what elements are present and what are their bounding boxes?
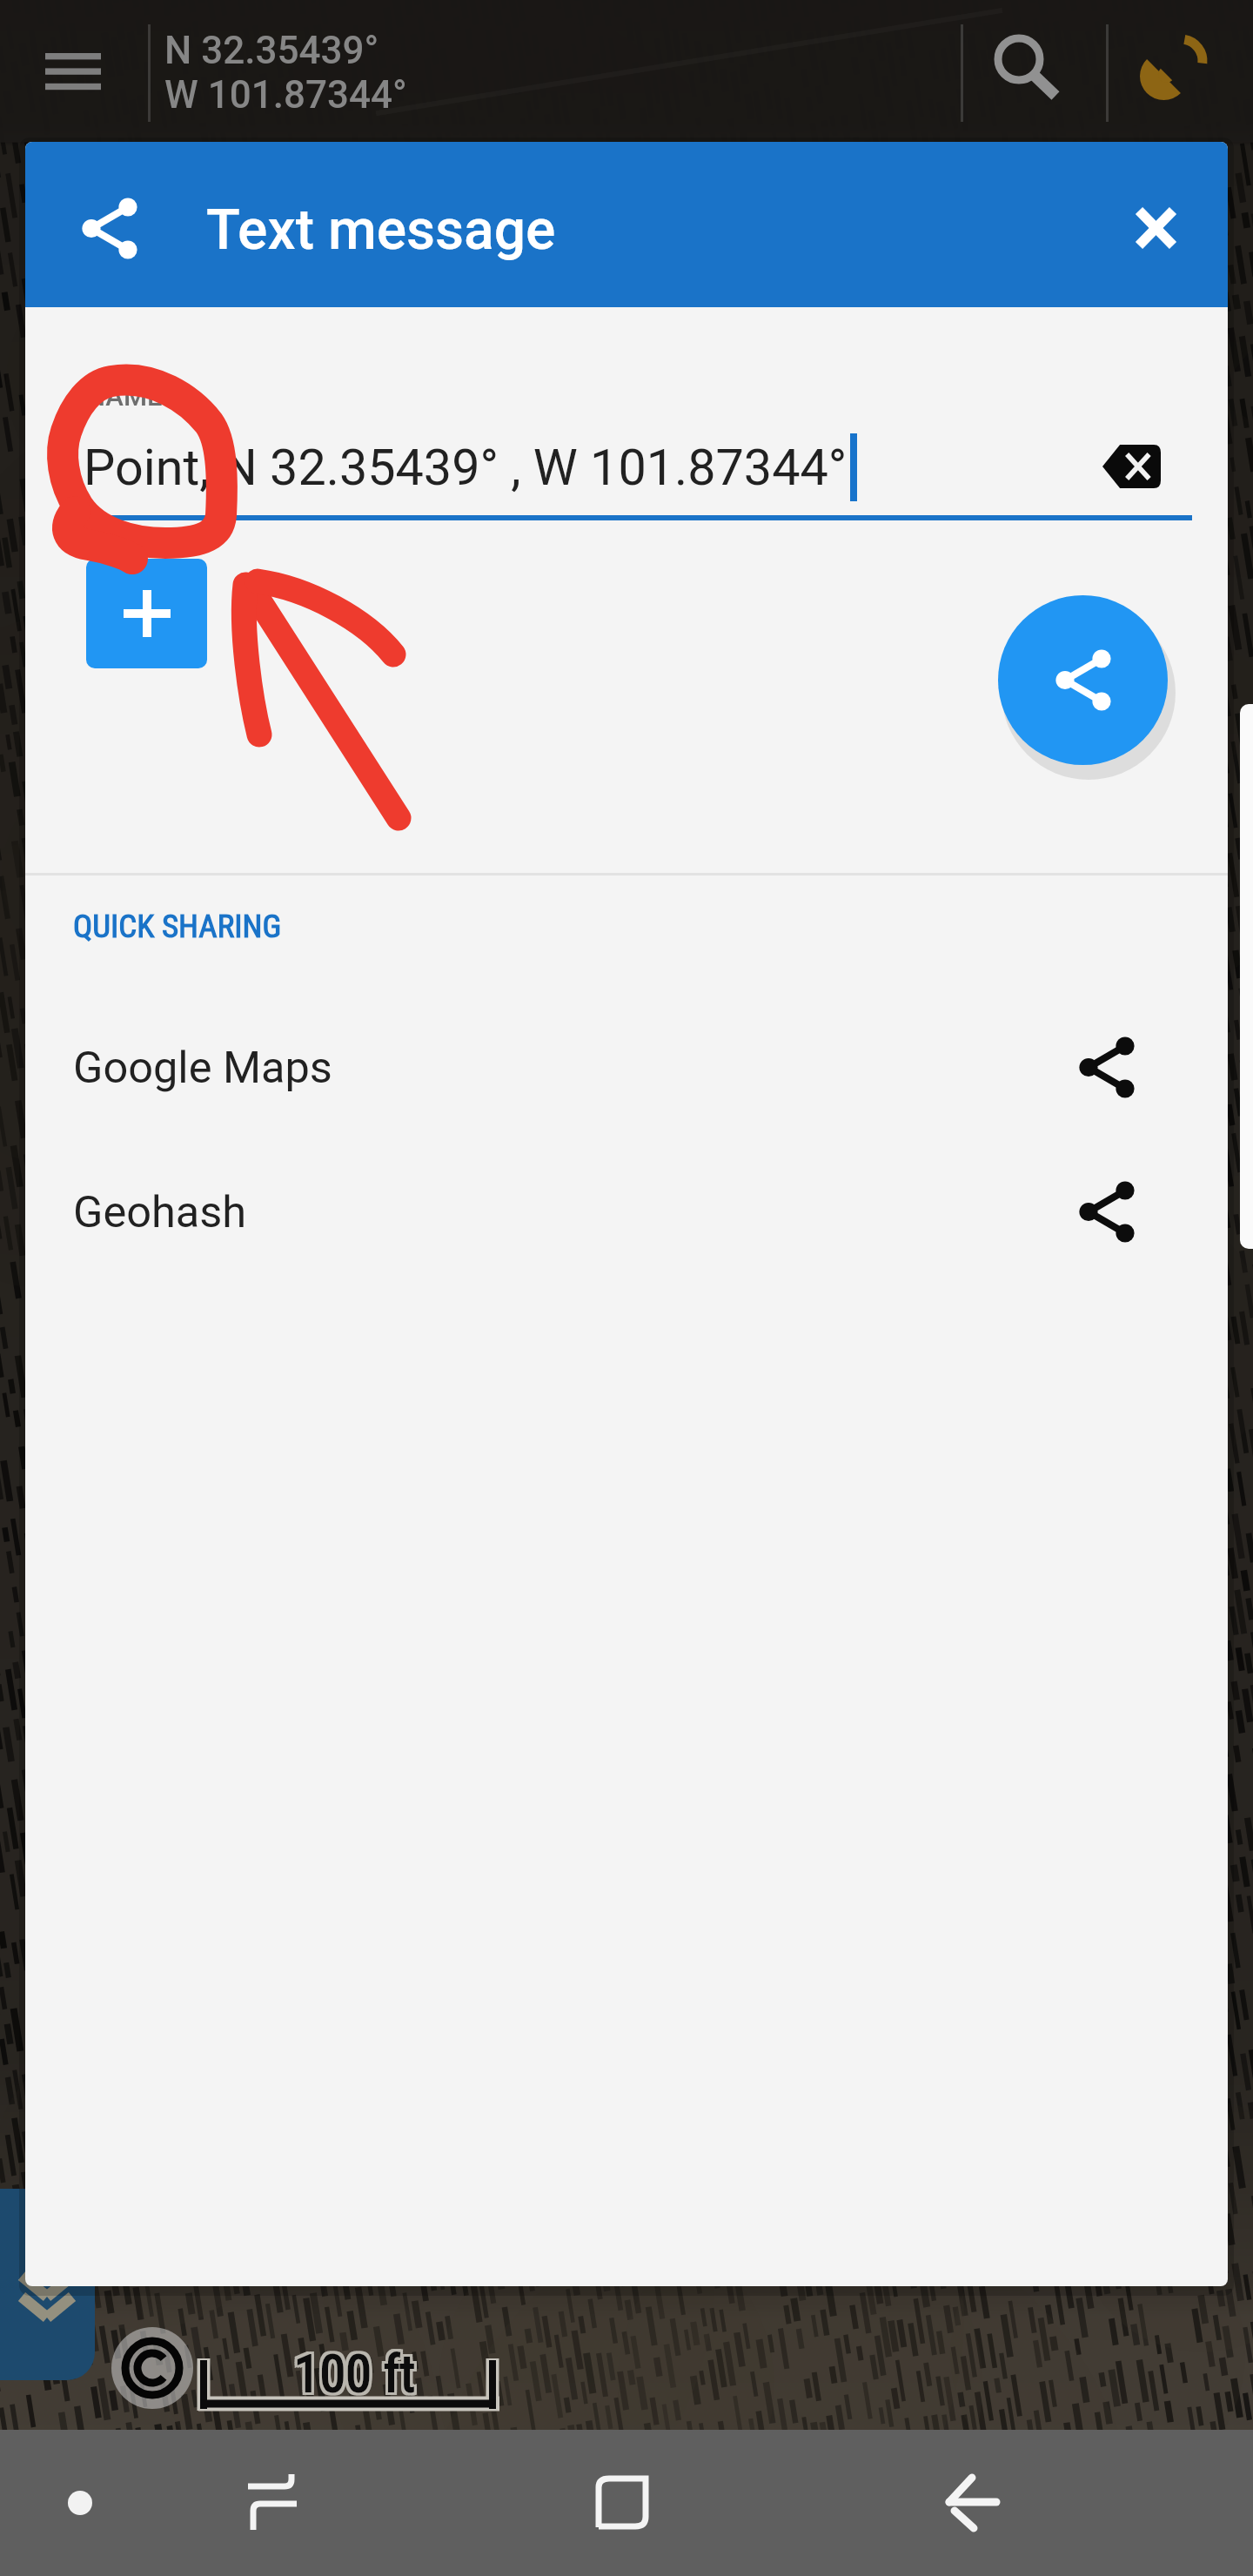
button[interactable]: GPS satellites xyxy=(1121,23,1218,120)
button[interactable]: Close xyxy=(1107,179,1204,277)
button[interactable]: Clear text xyxy=(1083,420,1180,513)
button[interactable]: Add name xyxy=(86,559,207,668)
button[interactable]: Geohash xyxy=(25,1138,1228,1285)
staticText: W 101.87344° xyxy=(164,72,407,117)
staticText: 100 ft xyxy=(294,2343,416,2404)
staticText: 100 ft xyxy=(297,2343,419,2404)
staticText: 100 ft xyxy=(297,2345,419,2406)
button[interactable]: Search xyxy=(980,20,1077,117)
button[interactable]: Share via text message xyxy=(998,595,1168,765)
staticText: Geohash xyxy=(73,1186,247,1238)
button[interactable]: Home xyxy=(570,2451,674,2555)
staticText: 100 ft xyxy=(297,2340,419,2401)
staticText: 100 ft xyxy=(294,2345,416,2406)
staticText: QUICK SHARING xyxy=(73,908,282,945)
staticText: Google Maps xyxy=(73,1042,332,1093)
button[interactable]: Assistant xyxy=(52,2475,108,2531)
button[interactable]: Back xyxy=(921,2451,1025,2555)
staticText: 100 ft xyxy=(294,2340,416,2401)
button[interactable]: Recents xyxy=(220,2451,325,2555)
button[interactable]: Menu xyxy=(26,24,120,118)
staticText: Point, N 32.35439° , W 101.87344° xyxy=(84,439,848,497)
staticText: 100 ft xyxy=(291,2343,413,2404)
staticText: 100 ft xyxy=(291,2340,413,2401)
button[interactable]: Google Maps xyxy=(25,994,1228,1141)
staticText: N 32.35439° xyxy=(164,28,379,73)
staticText: NAME xyxy=(86,380,163,412)
staticText: Text message xyxy=(206,198,556,263)
staticText: 100 ft xyxy=(291,2345,413,2406)
button[interactable]: Share xyxy=(54,179,165,277)
